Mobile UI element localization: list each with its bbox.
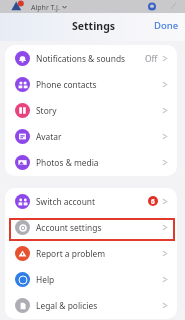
staticText: Off <box>145 53 158 64</box>
button[interactable]: Phone contacts <box>5 71 177 97</box>
other: Browser action <box>147 1 157 10</box>
staticText: Help <box>36 274 55 285</box>
button[interactable]: Report a problem <box>5 240 177 266</box>
staticText: Story <box>36 105 57 116</box>
button[interactable]: Notifications & sounds <box>5 45 177 71</box>
button[interactable]: Story <box>5 97 177 123</box>
staticText: Alphr T.J. <box>31 3 60 13</box>
button[interactable]: Switch account <box>5 188 177 214</box>
button[interactable]: Photos & media <box>5 149 177 175</box>
staticText: Avatar <box>36 131 62 142</box>
button[interactable]: Avatar <box>5 123 177 149</box>
staticText: Done <box>154 19 179 32</box>
staticText: Switch account <box>36 196 96 207</box>
staticText: 6 <box>151 197 155 206</box>
button[interactable]: Help <box>5 266 177 292</box>
staticText: Account settings <box>36 222 102 233</box>
staticText: Legal & policies <box>36 300 98 311</box>
staticText: Settings <box>72 19 116 33</box>
staticText: Notifications & sounds <box>36 53 126 64</box>
button[interactable]: Legal & policies <box>5 292 177 318</box>
staticText: Phone contacts <box>36 79 97 90</box>
button[interactable]: Account settings <box>5 214 177 240</box>
button[interactable]: Done <box>154 19 179 32</box>
staticText: Report a problem <box>36 248 106 259</box>
staticText: Photos & media <box>36 157 99 168</box>
